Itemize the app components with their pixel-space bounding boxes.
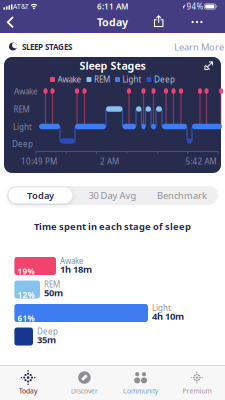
staticText: Today [19,387,37,395]
button[interactable]: 30 Day Avg [79,187,145,203]
staticText: Sleep Stages [79,58,145,73]
button[interactable] [189,16,205,28]
staticText: 19% [18,266,35,277]
staticText: 94% [186,1,203,12]
staticText: Awake [57,74,81,85]
staticText: Deep [12,139,33,149]
staticText: 6:11 AM [97,1,128,12]
button[interactable]: Premium [169,366,225,399]
staticText: Time spent in each stage of sleep [34,220,191,233]
staticText: 10:49 PM [21,156,57,167]
button[interactable] [7,17,15,28]
staticText: Learn More [174,41,224,53]
staticText: Deep [37,326,58,337]
staticText: Deep [154,74,175,85]
button[interactable]: Discover [56,366,112,399]
staticText: 4h 10m [152,310,184,322]
staticText: 61% [18,313,35,324]
staticText: Community [123,387,158,395]
staticText: Light [13,122,32,132]
staticText: Benchmark [157,189,207,202]
button[interactable]: Today [8,187,72,203]
staticText: AT&T [13,2,29,11]
staticText: 5:42 AM [185,156,216,167]
button[interactable] [154,15,163,27]
staticText: 35m [37,333,56,346]
staticText: 50m [44,286,63,299]
staticText: 2 AM [100,156,119,167]
staticText: Discover [71,387,98,395]
staticText: Light [122,74,141,85]
button[interactable]: Learn More [174,41,224,53]
button[interactable]: Community [113,366,169,399]
staticText: REM [13,104,29,115]
staticText: SLEEP STAGES [22,42,72,52]
staticText: 12% [18,289,35,300]
staticText: REM [94,74,110,85]
staticText: 30 Day Avg [88,189,136,202]
staticText: Awake [14,86,38,97]
button[interactable]: Benchmark [149,187,215,203]
staticText: Premium [182,387,211,395]
staticText: Awake [60,255,84,266]
staticText: 1h 18m [60,263,92,275]
staticText: Today [97,15,128,29]
staticText: Today [27,189,54,202]
staticText: REM [44,279,60,290]
staticText: Light [152,302,171,313]
button[interactable] [204,61,213,70]
button[interactable]: Today [0,366,56,399]
